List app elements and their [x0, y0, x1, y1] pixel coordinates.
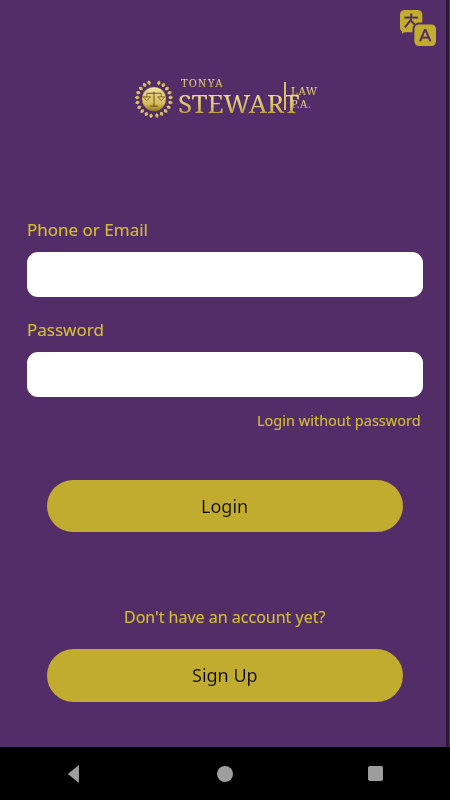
staticText: P.A.: [291, 96, 312, 111]
button[interactable]: Home: [150, 747, 300, 800]
button[interactable]: Recent apps: [300, 747, 450, 800]
button[interactable]: Login without password: [255, 408, 423, 432]
staticText: Login without password: [257, 410, 421, 430]
staticText: LAW: [291, 83, 318, 98]
staticText: Phone or Email: [27, 218, 148, 241]
staticText: Login: [201, 494, 249, 519]
staticText: Password: [27, 318, 104, 341]
button[interactable]: Text input: [27, 252, 423, 297]
staticText: TONYA: [181, 75, 224, 90]
button[interactable]: Text input: [27, 352, 423, 397]
button[interactable]: Login: [47, 480, 403, 532]
button[interactable]: Back: [0, 747, 150, 800]
button[interactable]: Sign Up: [47, 649, 403, 702]
staticText: STEWART: [178, 85, 300, 120]
button[interactable]: Translate: [394, 4, 442, 52]
staticText: Don't have an account yet?: [124, 606, 326, 628]
staticText: Sign Up: [192, 663, 258, 688]
